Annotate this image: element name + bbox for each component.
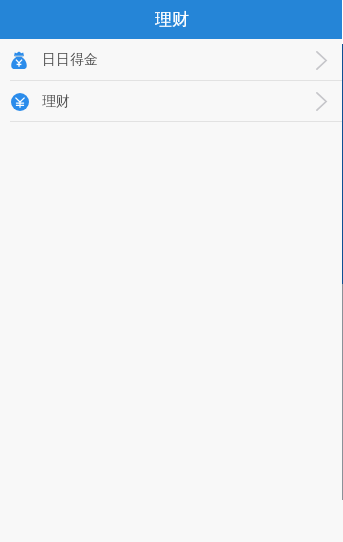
other: Open <box>316 92 327 111</box>
staticText: 理财 <box>155 9 189 30</box>
staticText: 理财 <box>42 93 70 111</box>
other: Open <box>316 51 327 70</box>
button[interactable]: 日日得金 <box>0 39 343 81</box>
staticText: 日日得金 <box>42 51 98 69</box>
button[interactable]: 理财 <box>0 81 343 122</box>
